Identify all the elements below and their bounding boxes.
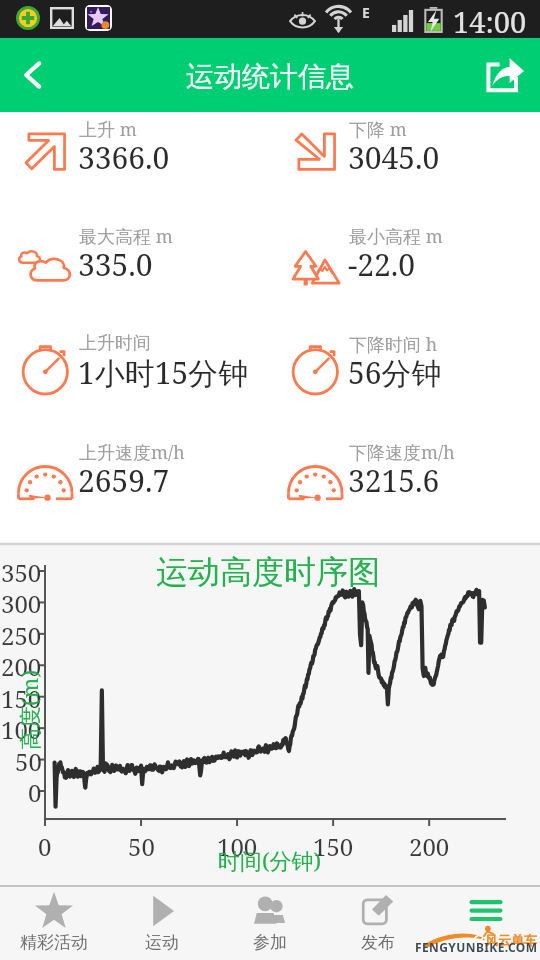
button[interactable]: Share	[466, 38, 540, 112]
staticText: 精彩活动	[20, 932, 88, 953]
staticText: 最小高程 m	[349, 224, 443, 249]
button[interactable]	[432, 887, 540, 960]
staticText: 56分钟	[348, 352, 442, 393]
staticText: 运动统计信息	[186, 59, 354, 94]
staticText: 100	[1, 713, 42, 743]
button[interactable]: 下降速度m/h	[270, 422, 540, 512]
staticText: E	[362, 3, 370, 22]
button[interactable]: 下降时间 h	[270, 314, 540, 404]
staticText: 下降时间 h	[349, 332, 438, 357]
staticText: 高度(m)	[14, 669, 42, 750]
staticText: 上升速度m/h	[79, 440, 185, 465]
button[interactable]: 上升时间	[0, 314, 270, 404]
staticText: 3045.0	[348, 137, 440, 178]
staticText: 2659.7	[78, 460, 170, 501]
staticText: 3215.6	[348, 460, 440, 501]
staticText: 时间(分钟)	[218, 845, 322, 873]
staticText: 250	[1, 619, 42, 649]
staticText: 运动高度时序图	[156, 552, 380, 592]
staticText: 0	[28, 776, 42, 806]
staticText: 50	[128, 830, 155, 860]
staticText: 50	[15, 745, 42, 775]
staticText: 3366.0	[78, 137, 170, 178]
staticText: 参加	[253, 932, 287, 953]
staticText: 300	[1, 587, 42, 617]
staticText: 0	[38, 830, 52, 860]
staticText: -22.0	[348, 244, 416, 285]
staticText: 风云单车	[485, 932, 537, 948]
button[interactable]: 下降 m	[270, 99, 540, 189]
staticText: 150	[313, 830, 354, 860]
staticText: 100	[217, 830, 258, 860]
staticText: 上升时间	[79, 332, 151, 355]
staticText: 下降 m	[349, 117, 407, 142]
button[interactable]: 最大高程 m	[0, 206, 270, 296]
button[interactable]: 发布	[324, 887, 432, 960]
button[interactable]: Back	[0, 38, 74, 112]
staticText: 1小时15分钟	[78, 352, 249, 393]
staticText: 150	[1, 682, 42, 712]
staticText: 运动	[145, 932, 179, 953]
staticText: 350	[1, 556, 42, 586]
staticText: 200	[409, 830, 450, 860]
button[interactable]: 最小高程 m	[270, 206, 540, 296]
staticText: 下降速度m/h	[349, 440, 455, 465]
staticText: 14:00	[453, 2, 527, 40]
button[interactable]: 上升速度m/h	[0, 422, 270, 512]
staticText: FENGYUNBIKE.COM	[415, 939, 538, 955]
staticText: 335.0	[78, 244, 153, 285]
staticText: 最大高程 m	[79, 224, 173, 249]
staticText: 上升 m	[79, 117, 137, 142]
button[interactable]: 精彩活动	[0, 887, 108, 960]
button[interactable]: 参加	[216, 887, 324, 960]
button[interactable]: 运动	[108, 887, 216, 960]
button[interactable]: 上升 m	[0, 99, 270, 189]
staticText: 发布	[361, 932, 395, 953]
staticText: 200	[1, 650, 42, 680]
